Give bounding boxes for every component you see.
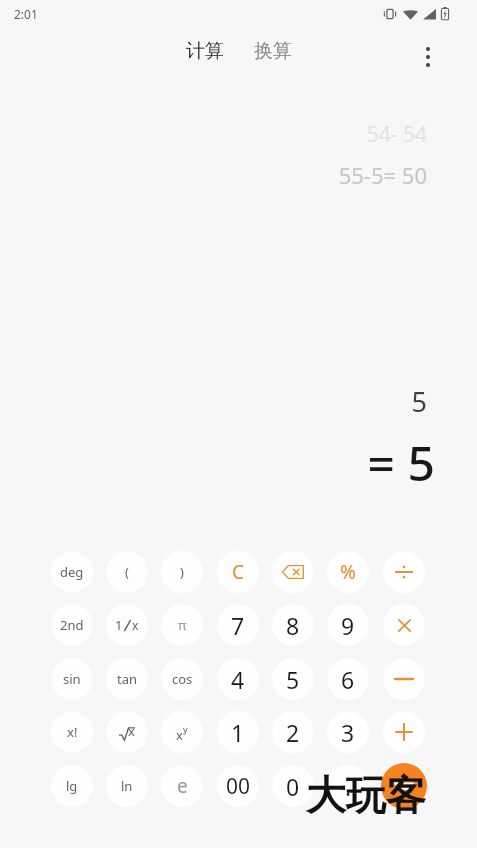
staticText: y <box>183 723 188 735</box>
staticText: 7 <box>231 610 245 641</box>
staticText: 6 <box>341 664 355 695</box>
staticText: x <box>128 722 135 740</box>
staticText: lg <box>66 777 78 795</box>
button[interactable]: 1 <box>217 711 259 753</box>
staticText: tan <box>117 670 138 688</box>
button[interactable]: ) <box>161 551 203 593</box>
staticText: 0 <box>286 771 300 802</box>
staticText: 00 <box>226 772 251 801</box>
staticText: 计算 <box>186 39 224 63</box>
staticText: 3 <box>341 717 355 748</box>
staticText: e <box>177 773 188 799</box>
button[interactable]: 2nd <box>51 604 93 646</box>
staticText: cos <box>172 670 193 688</box>
button[interactable]: 3 <box>327 711 369 753</box>
button[interactable]: sin <box>51 658 93 700</box>
staticText: 5 <box>286 664 300 695</box>
button[interactable]: Multiply <box>383 604 425 646</box>
staticText: π <box>178 616 187 634</box>
button[interactable]: deg <box>51 551 93 593</box>
staticText: 大玩客 <box>306 770 426 820</box>
staticText: 55-5= 50 <box>0 160 427 190</box>
button[interactable]: % <box>327 551 369 593</box>
staticText: . <box>345 771 352 802</box>
staticText: ) <box>180 563 184 581</box>
button[interactable]: 9 <box>327 604 369 646</box>
button[interactable]: Equals <box>381 763 427 809</box>
button[interactable]: 00 <box>217 765 259 807</box>
button[interactable]: 计算 <box>180 35 230 67</box>
button[interactable]: 6 <box>327 658 369 700</box>
button[interactable]: Backspace <box>272 551 314 593</box>
staticText: 8 <box>286 610 300 641</box>
button[interactable]: More options <box>412 41 444 73</box>
staticText: x <box>132 617 139 633</box>
button[interactable]: Minus <box>383 658 425 700</box>
staticText: C <box>232 559 245 585</box>
button[interactable]: 2 <box>272 711 314 753</box>
staticText: x! <box>67 723 78 741</box>
staticText: ln <box>121 777 133 795</box>
staticText: 4 <box>231 664 245 695</box>
staticText: x <box>176 726 183 744</box>
staticText: 1 <box>231 717 245 748</box>
button[interactable]: 0 <box>272 765 314 807</box>
button[interactable]: 5 <box>272 658 314 700</box>
button[interactable]: 8 <box>272 604 314 646</box>
staticText: 5 <box>0 383 427 420</box>
staticText: 1 <box>115 616 123 634</box>
staticText: 2nd <box>60 616 84 634</box>
button[interactable]: Reciprocal <box>106 604 148 646</box>
button[interactable]: 7 <box>217 604 259 646</box>
button[interactable]: . <box>327 765 369 807</box>
staticText: = 5 <box>0 430 435 495</box>
button[interactable]: Divide <box>383 551 425 593</box>
button[interactable]: 换算 <box>248 35 298 67</box>
staticText: sin <box>63 670 81 688</box>
staticText: % <box>340 559 356 585</box>
button[interactable]: Power <box>161 711 203 753</box>
button[interactable]: tan <box>106 658 148 700</box>
button[interactable]: C <box>217 551 259 593</box>
staticText: 9 <box>341 610 355 641</box>
staticText: deg <box>60 563 84 581</box>
staticText: 2:01 <box>14 6 38 22</box>
button[interactable]: ( <box>106 551 148 593</box>
button[interactable]: cos <box>161 658 203 700</box>
button[interactable]: Square root <box>106 711 148 753</box>
button[interactable]: e <box>161 765 203 807</box>
button[interactable]: lg <box>51 765 93 807</box>
button[interactable]: π <box>161 604 203 646</box>
button[interactable]: ln <box>106 765 148 807</box>
staticText: 换算 <box>254 39 292 63</box>
button[interactable]: 4 <box>217 658 259 700</box>
button[interactable]: x! <box>51 711 93 753</box>
staticText: ( <box>125 563 129 581</box>
staticText: 2 <box>286 717 300 748</box>
button[interactable]: Plus <box>383 711 425 753</box>
